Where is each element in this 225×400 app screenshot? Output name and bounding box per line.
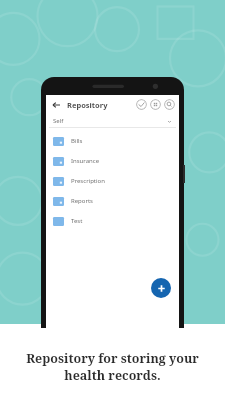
staticText: Self bbox=[53, 117, 64, 125]
staticText: Test bbox=[71, 217, 83, 225]
staticText: Prescription bbox=[71, 177, 105, 185]
button[interactable]: Back bbox=[50, 99, 62, 111]
staticText: Repository for storing your health recor… bbox=[26, 350, 199, 384]
button[interactable]: Bills bbox=[46, 131, 179, 151]
button[interactable]: Select all bbox=[136, 99, 147, 110]
button[interactable]: Grid view bbox=[150, 99, 161, 110]
staticText: Bills bbox=[71, 137, 83, 145]
button[interactable]: Self bbox=[49, 114, 176, 128]
staticText: Reports bbox=[71, 197, 93, 205]
staticText: Insurance bbox=[71, 157, 100, 165]
button[interactable]: Add record bbox=[151, 278, 171, 298]
button[interactable]: Search bbox=[164, 99, 175, 110]
staticText: Repository bbox=[67, 100, 108, 110]
button[interactable]: Test bbox=[46, 211, 179, 231]
button[interactable]: Prescription bbox=[46, 171, 179, 191]
button[interactable]: Reports bbox=[46, 191, 179, 211]
button[interactable]: Insurance bbox=[46, 151, 179, 171]
